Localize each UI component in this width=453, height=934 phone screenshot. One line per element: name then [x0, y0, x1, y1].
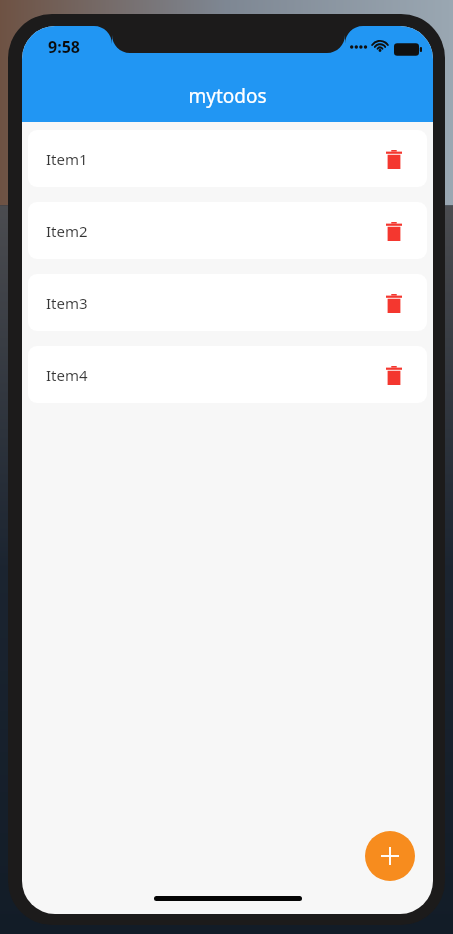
- button[interactable]: Item4: [28, 346, 427, 403]
- button[interactable]: Item3: [28, 274, 427, 331]
- button[interactable]: Item1: [28, 130, 427, 187]
- staticText: Item1: [46, 149, 88, 169]
- button[interactable]: Delete Item4: [379, 360, 409, 390]
- button[interactable]: Add todo: [365, 831, 415, 881]
- button[interactable]: Delete Item3: [379, 288, 409, 318]
- staticText: Item2: [46, 221, 88, 241]
- button[interactable]: Delete Item2: [379, 216, 409, 246]
- button[interactable]: Delete Item1: [379, 144, 409, 174]
- staticText: Item3: [46, 293, 88, 313]
- button[interactable]: Item2: [28, 202, 427, 259]
- staticText: mytodos: [188, 83, 267, 109]
- staticText: Item4: [46, 365, 88, 385]
- staticText: 9:58: [48, 36, 80, 58]
